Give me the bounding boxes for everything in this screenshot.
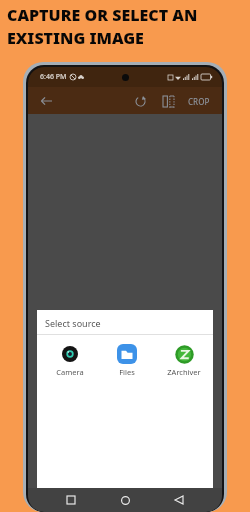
staticText: Select source bbox=[45, 317, 101, 329]
staticText: Files bbox=[119, 367, 135, 377]
button[interactable]: Rotate bbox=[128, 89, 152, 113]
button[interactable]: ZArchiver bbox=[155, 342, 212, 379]
staticText: Camera bbox=[56, 367, 84, 377]
staticText: CROP bbox=[188, 96, 210, 107]
staticText: EXISTING IMAGE bbox=[7, 27, 144, 49]
button[interactable]: Recents bbox=[60, 489, 82, 511]
button[interactable]: CROP bbox=[184, 91, 214, 112]
staticText: ZArchiver bbox=[167, 367, 201, 377]
button[interactable]: Camera bbox=[41, 342, 98, 379]
button[interactable]: Flip bbox=[156, 89, 180, 113]
button[interactable]: Files bbox=[98, 342, 155, 379]
staticText: CAPTURE OR SELECT AN bbox=[7, 4, 198, 26]
staticText: 6:46 PM bbox=[40, 72, 67, 82]
button[interactable]: Home bbox=[114, 489, 136, 511]
button[interactable]: Back bbox=[34, 89, 58, 113]
button[interactable]: Back bbox=[168, 489, 190, 511]
